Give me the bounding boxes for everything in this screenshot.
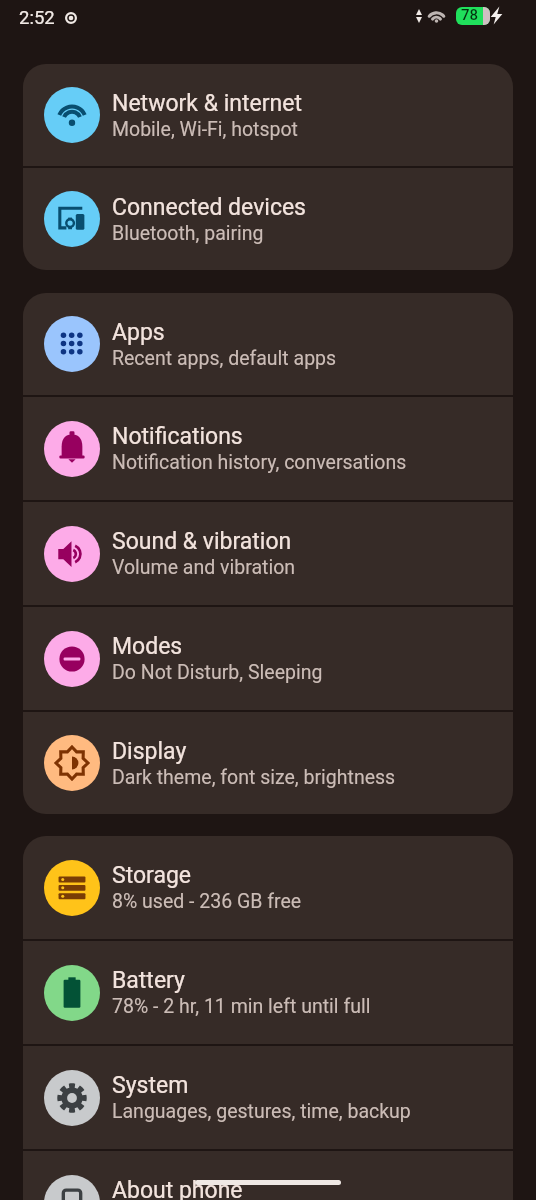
staticText: 78 — [461, 7, 479, 24]
button[interactable]: Modes — [23, 607, 513, 710]
button[interactable]: System — [23, 1046, 513, 1149]
staticText: Languages, gestures, time, backup — [112, 1100, 411, 1123]
staticText: About phone — [112, 1177, 243, 1200]
staticText: Sound & vibration — [112, 528, 292, 555]
button[interactable]: Apps — [23, 293, 513, 395]
button[interactable]: Connected devices — [23, 168, 513, 270]
staticText: Dark theme, font size, brightness — [112, 766, 396, 789]
staticText: Battery — [112, 967, 185, 994]
button[interactable]: Display — [23, 712, 513, 814]
button[interactable]: Network & internet — [23, 64, 513, 166]
button[interactable]: Battery — [23, 941, 513, 1044]
staticText: 2:52 — [19, 7, 55, 29]
button[interactable]: Storage — [23, 836, 513, 939]
staticText: Do Not Disturb, Sleeping — [112, 661, 323, 684]
staticText: Display — [112, 738, 187, 765]
staticText: Bluetooth, pairing — [112, 222, 264, 245]
staticText: Modes — [112, 633, 183, 660]
button[interactable]: About phone — [23, 1151, 513, 1200]
staticText: Recent apps, default apps — [112, 347, 337, 370]
button[interactable]: Sound & vibration — [23, 502, 513, 605]
button[interactable]: Notifications — [23, 397, 513, 500]
staticText: 78% - 2 hr, 11 min left until full — [112, 995, 371, 1018]
staticText: Volume and vibration — [112, 556, 296, 579]
staticText: Notifications — [112, 423, 243, 450]
staticText: Storage — [112, 862, 192, 889]
staticText: Mobile, Wi-Fi, hotspot — [112, 118, 298, 141]
staticText: Notification history, conversations — [112, 451, 407, 474]
staticText: Network & internet — [112, 90, 302, 117]
staticText: 8% used - 236 GB free — [112, 890, 302, 913]
staticText: Connected devices — [112, 194, 306, 221]
staticText: Apps — [112, 319, 165, 346]
staticText: System — [112, 1072, 189, 1099]
